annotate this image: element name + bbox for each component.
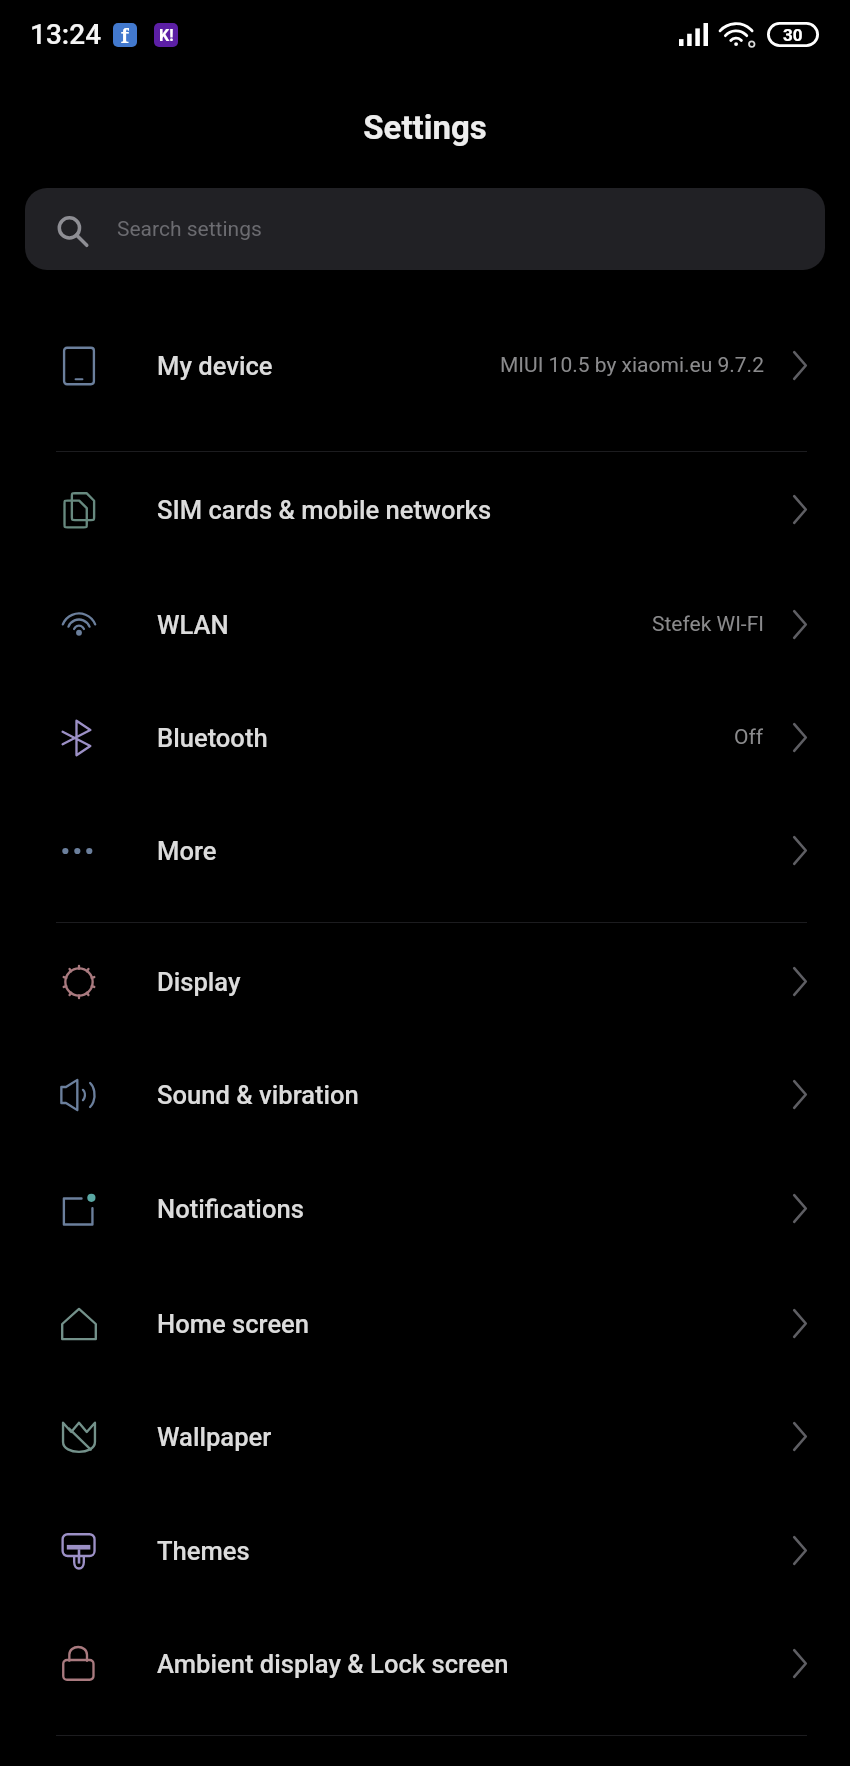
button[interactable]: Wallpaper — [0, 1380, 850, 1493]
staticText: WLAN — [157, 610, 229, 640]
staticText: Search settings — [117, 217, 262, 242]
staticText: My device — [157, 351, 273, 381]
staticText: Sound & vibration — [157, 1080, 359, 1110]
staticText: Ambient display & Lock screen — [157, 1649, 509, 1679]
staticText: 13:24 — [30, 18, 102, 51]
button[interactable]: Bluetooth — [0, 681, 850, 794]
button[interactable]: WLAN — [0, 568, 850, 681]
staticText: Off — [734, 725, 764, 750]
button[interactable]: Home screen — [0, 1267, 850, 1380]
button[interactable]: Notifications — [0, 1152, 850, 1265]
staticText: More — [157, 836, 217, 866]
staticText: MIUI 10.5 by xiaomi.eu 9.7.2 — [500, 353, 764, 378]
button[interactable]: Search settings — [25, 188, 825, 270]
staticText: 30 — [783, 25, 803, 45]
staticText: Themes — [157, 1536, 250, 1566]
button[interactable]: Themes — [0, 1494, 850, 1607]
staticText: Notifications — [157, 1194, 304, 1224]
staticText: SIM cards & mobile networks — [157, 495, 492, 525]
staticText: Home screen — [157, 1309, 310, 1339]
staticText: f — [121, 23, 129, 47]
button[interactable]: Ambient display & Lock screen — [0, 1607, 850, 1720]
staticText: Wallpaper — [157, 1422, 272, 1452]
staticText: Settings — [363, 108, 487, 147]
button[interactable]: My device — [0, 309, 850, 422]
button[interactable]: SIM cards & mobile networks — [0, 453, 850, 566]
button[interactable]: Sound & vibration — [0, 1038, 850, 1151]
staticText: K! — [159, 26, 174, 45]
staticText: Bluetooth — [157, 723, 268, 753]
staticText: Stefek WI-FI — [652, 612, 764, 637]
staticText: Display — [157, 967, 241, 997]
button[interactable]: More — [0, 794, 850, 907]
button[interactable]: Display — [0, 925, 850, 1038]
